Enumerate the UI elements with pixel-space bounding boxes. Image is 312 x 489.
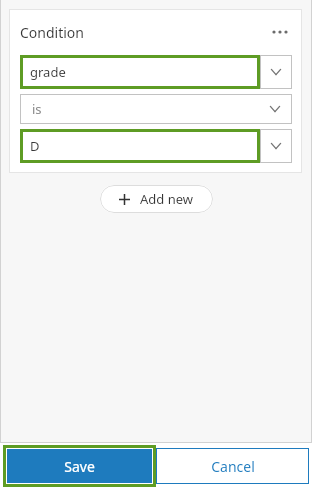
staticText: grade <box>30 63 66 81</box>
button[interactable]: is <box>20 94 292 124</box>
button[interactable]: More options <box>268 20 292 44</box>
staticText: Save <box>64 457 95 476</box>
button[interactable]: Save <box>7 449 152 483</box>
staticText: is <box>32 100 42 118</box>
staticText: Condition <box>20 23 84 42</box>
staticText: Add new <box>140 190 194 208</box>
button[interactable]: Add new <box>100 185 213 213</box>
button[interactable]: grade <box>20 55 260 89</box>
staticText: D <box>30 137 40 155</box>
button[interactable]: Cancel <box>156 448 309 484</box>
button[interactable]: D <box>20 129 260 163</box>
button[interactable]: Open grade list <box>260 55 292 89</box>
staticText: Cancel <box>211 457 255 476</box>
button[interactable]: Open D list <box>260 129 292 163</box>
